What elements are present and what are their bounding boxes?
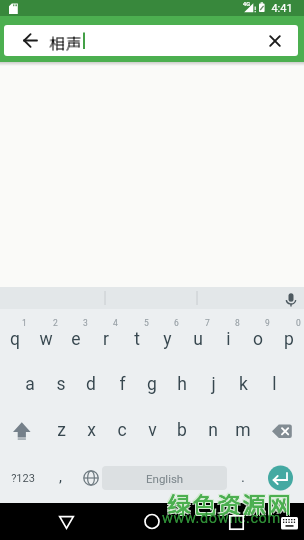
staticText: 5 bbox=[144, 318, 149, 328]
staticText: 7 bbox=[205, 318, 210, 328]
staticText: y bbox=[163, 329, 172, 350]
staticText: 绿色资源网 bbox=[166, 487, 291, 515]
staticText: 2 bbox=[53, 318, 58, 328]
staticText: English bbox=[146, 472, 184, 485]
staticText: 绿色资源网 bbox=[167, 486, 292, 514]
staticText: x bbox=[87, 420, 96, 441]
staticText: 8 bbox=[235, 318, 240, 328]
staticText: e bbox=[71, 329, 81, 350]
staticText: 3 bbox=[83, 318, 88, 328]
staticText: u bbox=[193, 329, 203, 350]
staticText: 绿色资源网 bbox=[165, 486, 290, 514]
staticText: 1 bbox=[22, 318, 27, 328]
staticText: z bbox=[57, 420, 66, 441]
staticText: 绿色资源网 bbox=[167, 487, 292, 515]
button[interactable] bbox=[269, 466, 293, 490]
staticText: v bbox=[148, 420, 157, 441]
staticText: k bbox=[239, 374, 248, 395]
staticText: 相声 bbox=[50, 31, 84, 51]
staticText: 6 bbox=[174, 318, 179, 328]
staticText: r bbox=[103, 329, 109, 350]
staticText: , bbox=[59, 468, 62, 486]
staticText: 绿色资源网 bbox=[167, 486, 292, 514]
staticText: q bbox=[10, 329, 20, 350]
button[interactable] bbox=[221, 506, 251, 536]
staticText: p bbox=[284, 329, 294, 350]
staticText: c bbox=[117, 420, 127, 441]
button[interactable] bbox=[16, 27, 44, 55]
button[interactable] bbox=[276, 283, 304, 309]
staticText: l bbox=[272, 374, 277, 395]
staticText: 绿色资源网 bbox=[167, 487, 292, 515]
staticText: h bbox=[177, 374, 187, 395]
staticText: 绿色资源网 bbox=[166, 488, 291, 516]
staticText: 相声 bbox=[49, 32, 83, 52]
staticText: o bbox=[253, 329, 263, 350]
staticText: m bbox=[235, 420, 251, 441]
staticText: 9 bbox=[265, 318, 270, 328]
staticText: g bbox=[147, 374, 157, 395]
staticText: 绿色资源网 bbox=[166, 487, 291, 515]
staticText: d bbox=[86, 374, 96, 395]
staticText: ?123 bbox=[11, 472, 35, 485]
button[interactable] bbox=[52, 506, 82, 536]
staticText: 绿色资源网 bbox=[166, 485, 291, 513]
button[interactable] bbox=[4, 25, 298, 56]
staticText: 0 bbox=[296, 318, 301, 328]
staticText: www.downc.com bbox=[162, 510, 281, 526]
staticText: t bbox=[134, 329, 140, 350]
staticText: a bbox=[25, 374, 35, 395]
staticText: www.downc.com bbox=[162, 510, 281, 526]
staticText: 绿色资源网 bbox=[165, 488, 290, 516]
button[interactable] bbox=[261, 27, 289, 55]
staticText: 绿色资源网 bbox=[165, 485, 290, 513]
staticText: 相声 bbox=[50, 32, 84, 52]
staticText: 4:41 bbox=[271, 2, 293, 15]
staticText: w bbox=[39, 329, 53, 350]
staticText: 相声 bbox=[49, 31, 83, 51]
staticText: 绿色资源网 bbox=[168, 485, 293, 513]
staticText: i bbox=[226, 329, 231, 350]
staticText: j bbox=[211, 374, 216, 395]
staticText: 绿色资源网 bbox=[167, 487, 292, 515]
staticText: f bbox=[119, 374, 126, 395]
staticText: 4G bbox=[243, 1, 250, 7]
button[interactable]: English bbox=[102, 466, 227, 490]
staticText: . bbox=[241, 468, 245, 486]
staticText: 绿色资源网 bbox=[166, 486, 291, 514]
staticText: 绿色资源网 bbox=[167, 487, 292, 515]
staticText: 4 bbox=[113, 318, 118, 328]
staticText: s bbox=[56, 374, 66, 395]
staticText: 绿色资源网 bbox=[168, 488, 293, 516]
staticText: 绿色资源网 bbox=[166, 486, 291, 514]
staticText: 绿色资源网 bbox=[168, 486, 293, 514]
staticText: b bbox=[177, 420, 187, 441]
button[interactable] bbox=[137, 506, 167, 536]
staticText: n bbox=[208, 420, 218, 441]
